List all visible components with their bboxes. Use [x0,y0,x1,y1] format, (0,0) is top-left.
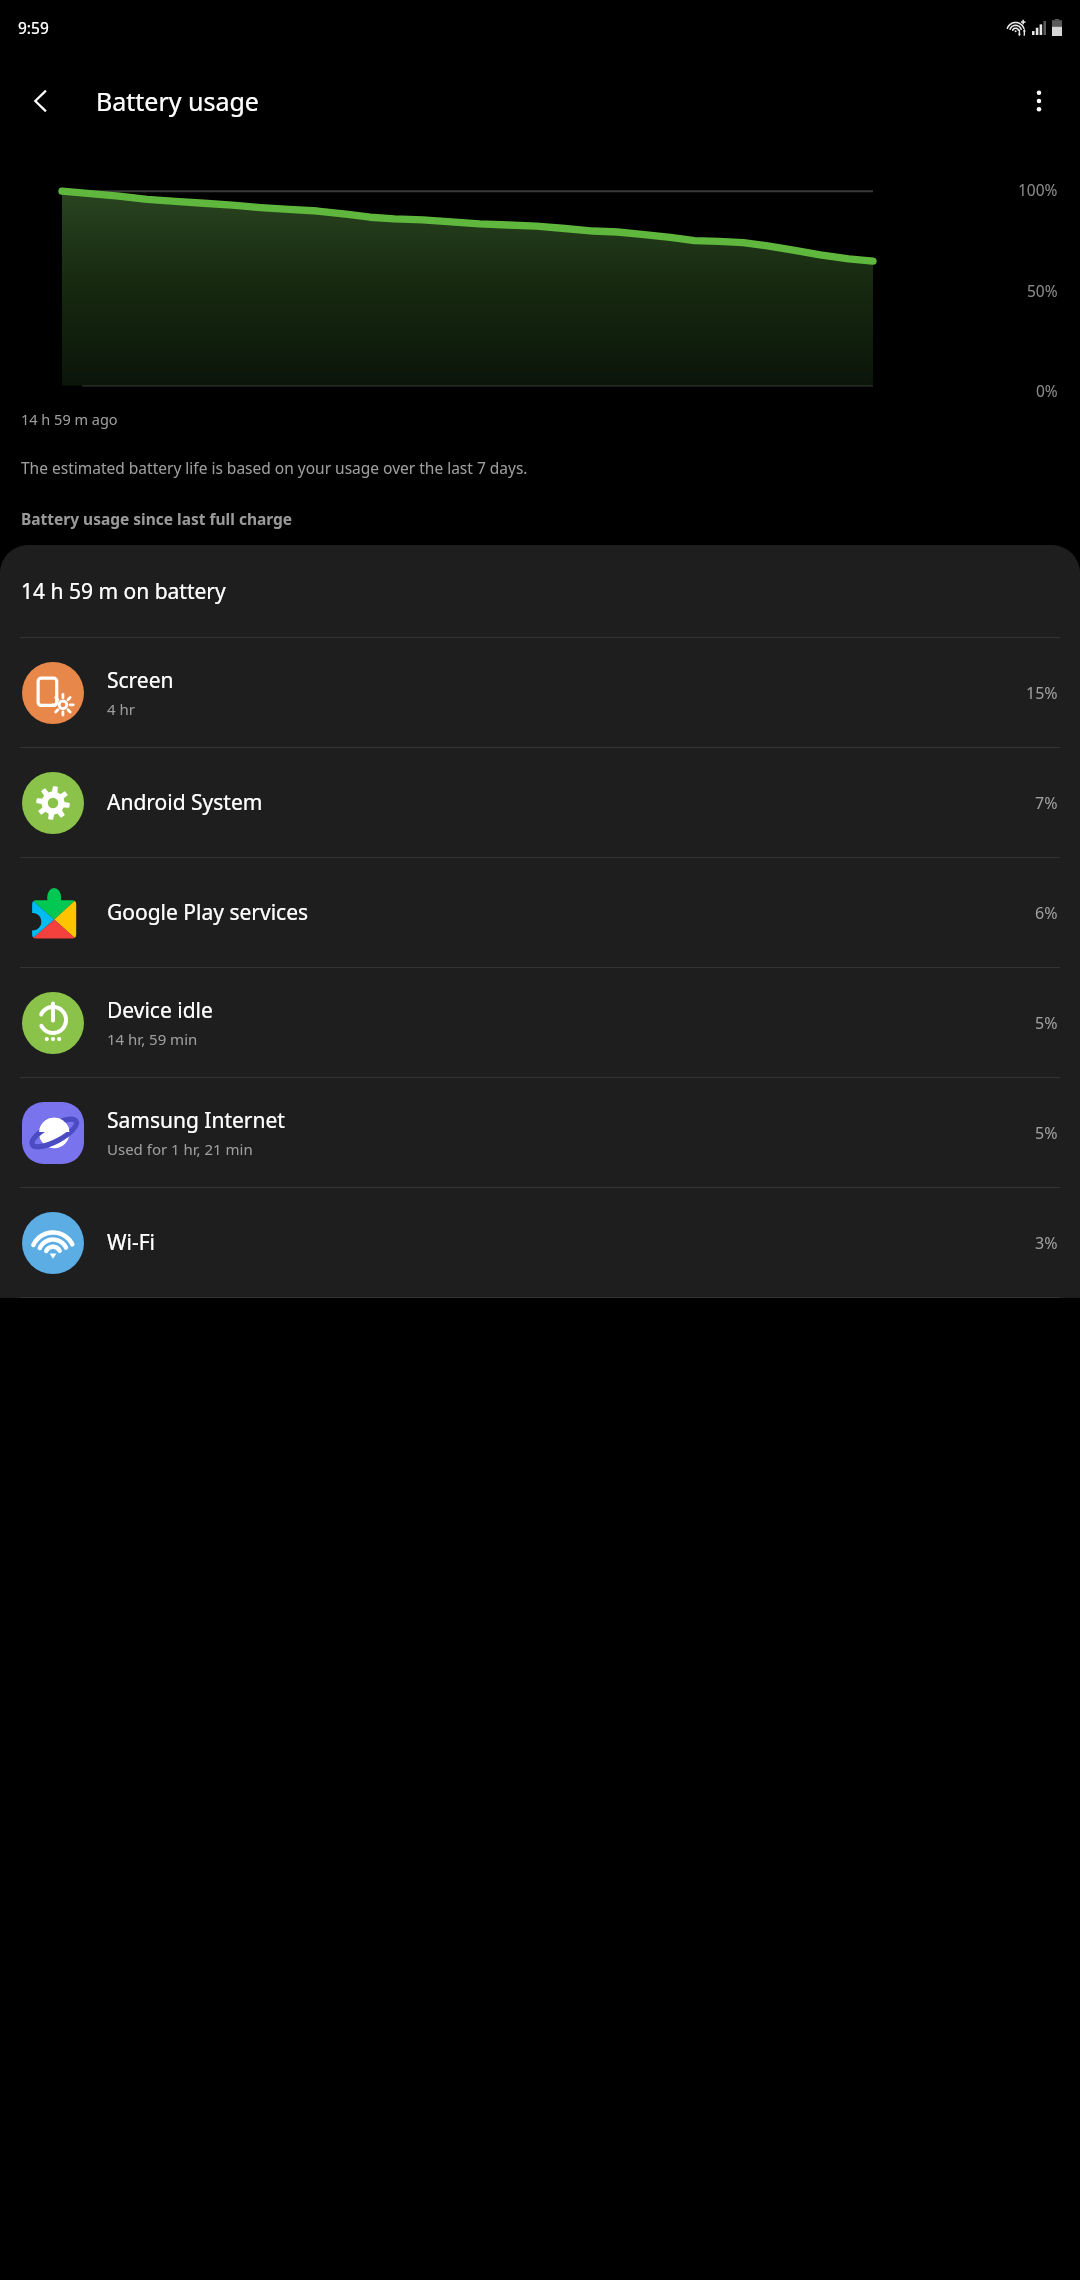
button[interactable]: Android System [0,748,1080,857]
button[interactable]: Screen [0,638,1080,747]
staticText: Screen [107,666,174,695]
staticText: 9:59 [18,17,49,38]
staticText: 50% [1027,280,1058,301]
button[interactable]: Device idle [0,968,1080,1077]
staticText: 14 h 59 m on battery [21,577,226,606]
button[interactable]: Google Play services [0,858,1080,967]
button[interactable]: Back [10,70,72,132]
staticText: 5% [1035,1012,1058,1034]
button[interactable]: Wi-Fi [0,1188,1080,1297]
staticText: Google Play services [107,898,309,927]
staticText: 0% [1036,380,1058,401]
staticText: 14 h 59 m ago [21,409,118,429]
button[interactable]: Samsung Internet [0,1078,1080,1187]
staticText: Battery usage [96,84,259,118]
button[interactable]: More options [1008,70,1070,132]
staticText: The estimated battery life is based on y… [21,457,528,478]
staticText: 3% [1035,1232,1058,1254]
staticText: Device idle [107,996,213,1025]
staticText: 6% [1035,902,1058,924]
staticText: 100% [1018,179,1058,200]
staticText: 15% [1026,682,1058,704]
staticText: Used for 1 hr, 21 min [107,1139,253,1159]
staticText: 5% [1035,1122,1058,1144]
staticText: Samsung Internet [107,1106,285,1135]
staticText: 14 hr, 59 min [107,1029,198,1049]
staticText: 4 hr [107,699,135,719]
staticText: Wi-Fi [107,1228,156,1257]
staticText: Battery usage since last full charge [21,508,293,529]
staticText: Android System [107,788,263,817]
staticText: 7% [1035,792,1058,814]
